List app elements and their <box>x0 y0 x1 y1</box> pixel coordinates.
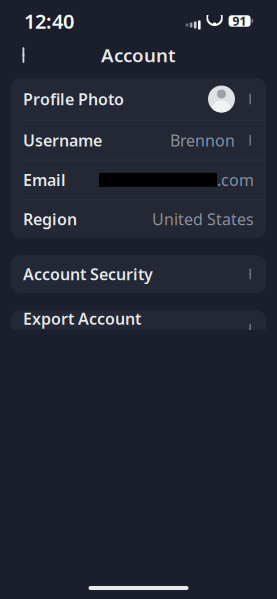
button[interactable]: Export Account Information <box>11 310 266 348</box>
staticText: Profile Photo <box>23 88 124 110</box>
staticText: 91 <box>233 13 247 29</box>
staticText: United States <box>152 208 254 230</box>
staticText: Username <box>23 130 102 151</box>
button[interactable]: Profile Photo <box>11 78 266 120</box>
button[interactable]: Account Security <box>11 255 266 293</box>
staticText: 12:40 <box>24 8 74 34</box>
staticText: .com <box>217 169 254 190</box>
staticText: Email <box>23 169 66 190</box>
staticText: Export Account Information <box>23 308 141 350</box>
button[interactable]: Back <box>6 36 44 74</box>
staticText: Region <box>23 208 77 230</box>
button[interactable]: Username <box>11 121 266 160</box>
staticText: Account <box>101 43 176 67</box>
staticText: Brennon <box>170 130 235 151</box>
staticText: Account Security <box>23 263 153 285</box>
